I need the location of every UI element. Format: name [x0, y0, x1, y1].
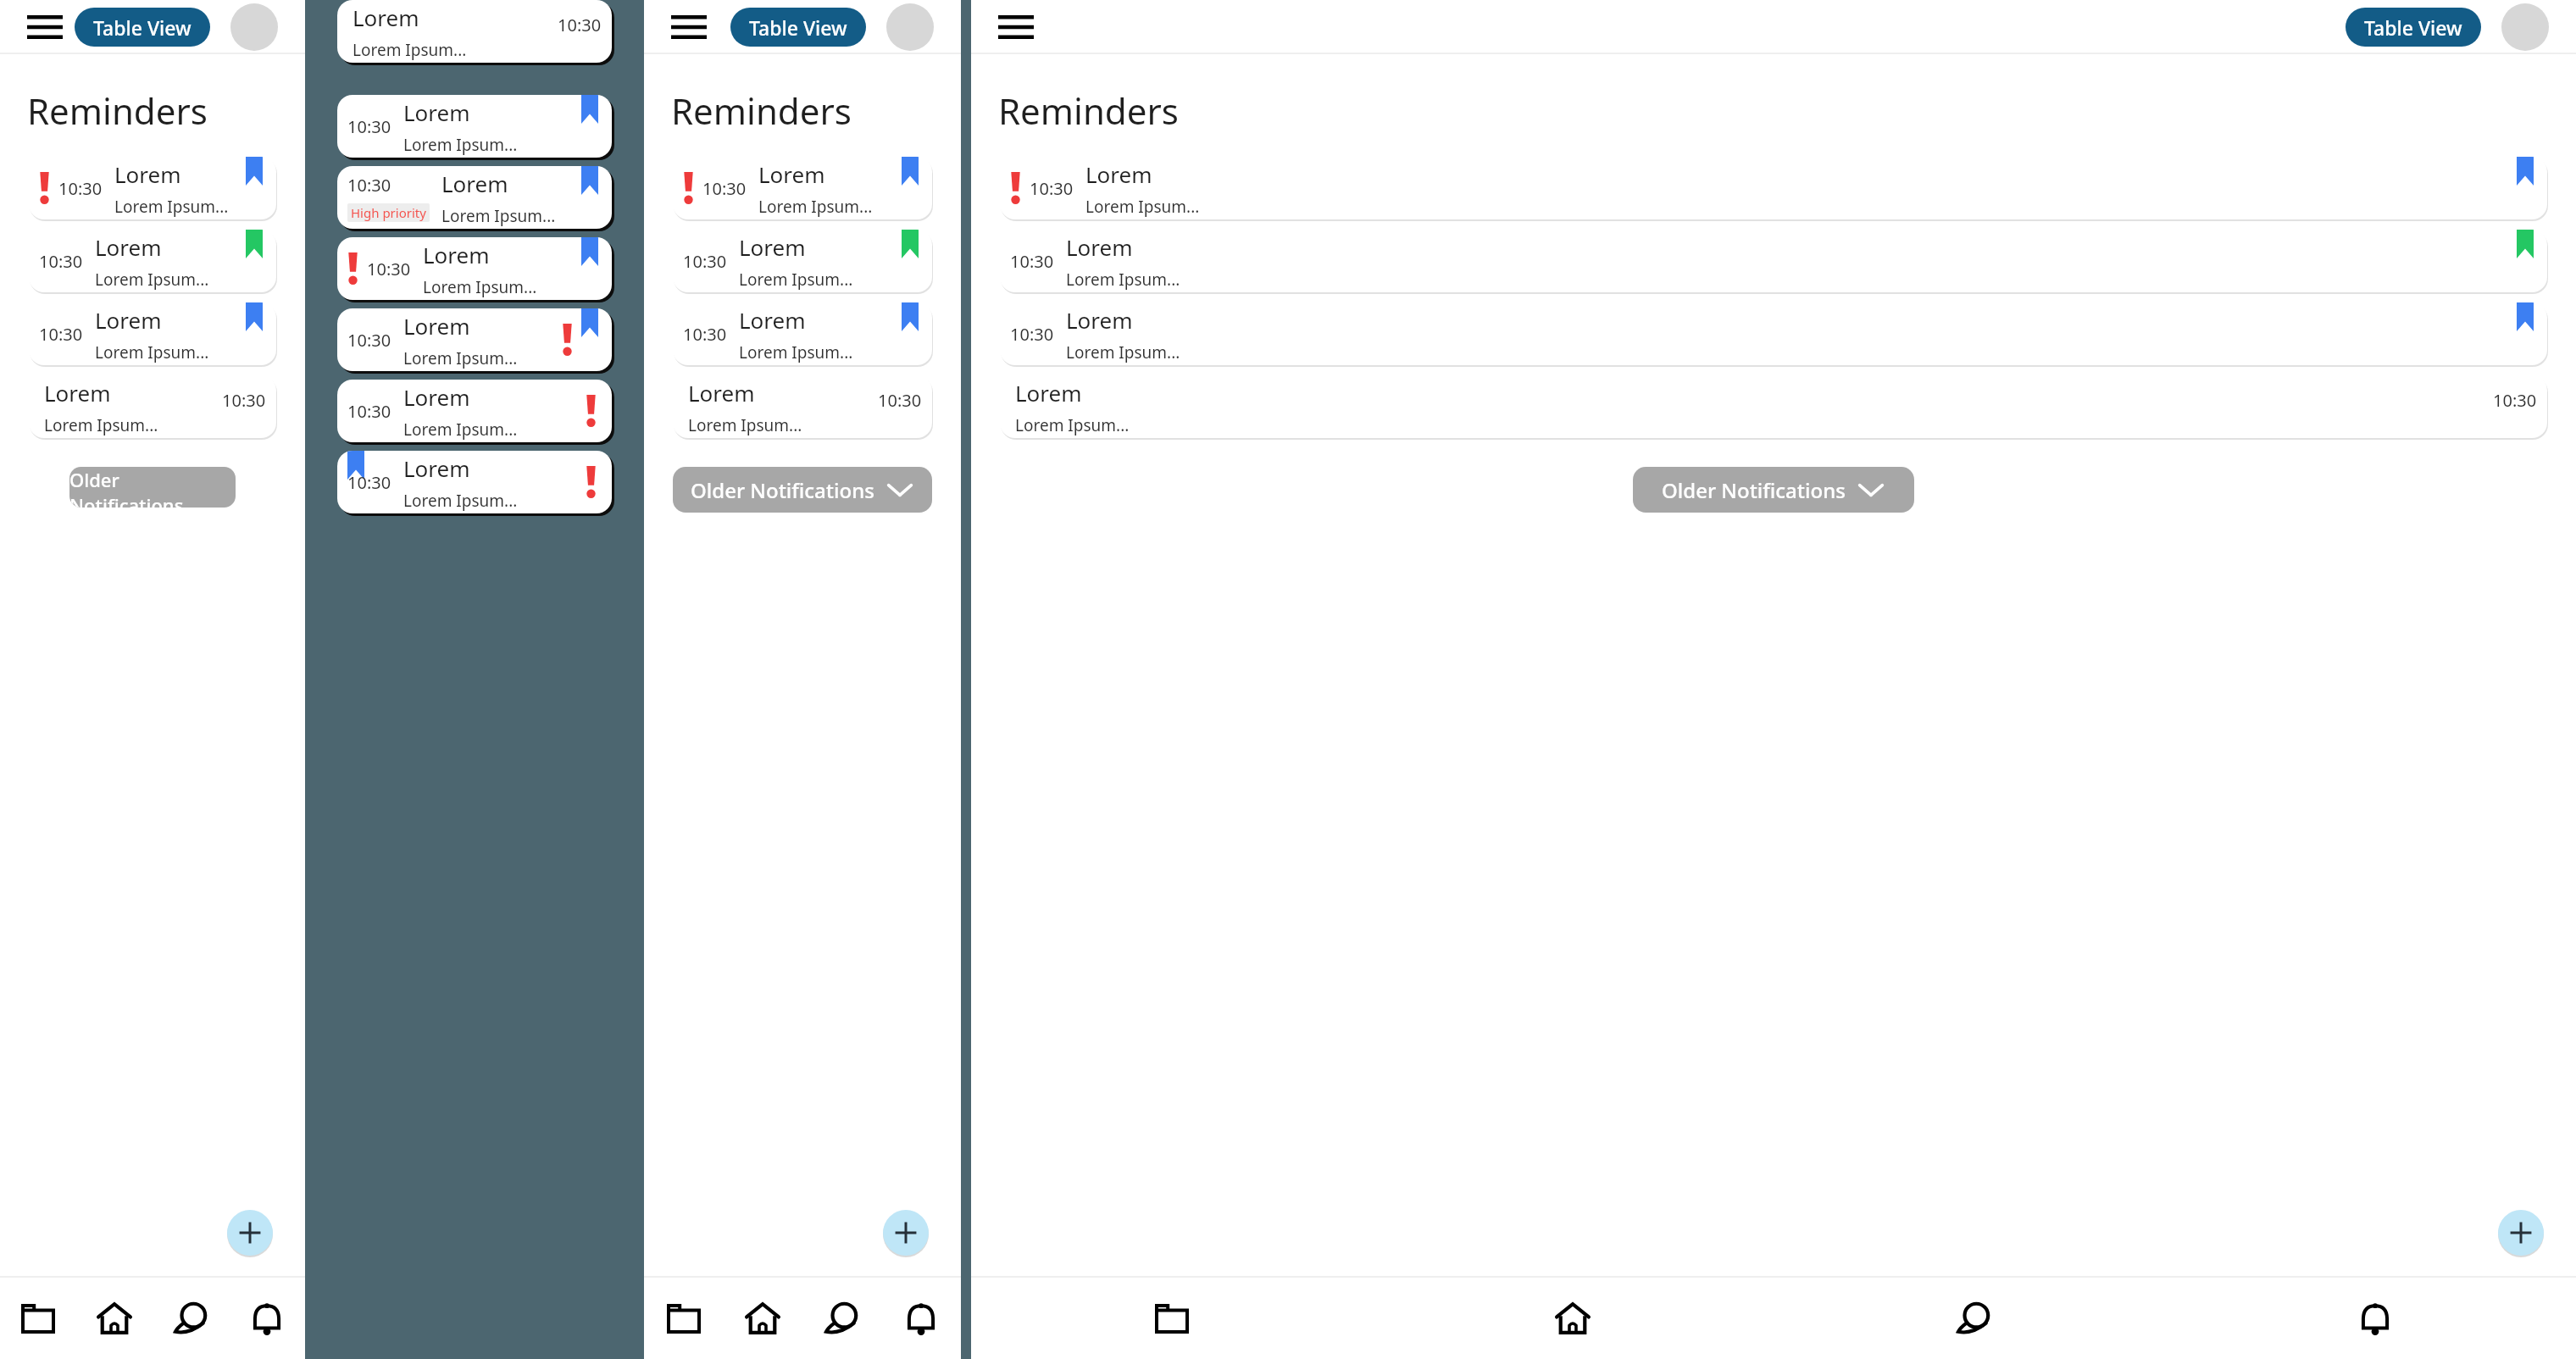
button[interactable]: Home — [76, 1278, 153, 1359]
button[interactable]: 10:30 — [29, 230, 276, 292]
staticText: 10:30 — [1010, 323, 1054, 346]
button[interactable]: Notifications — [2174, 1278, 2576, 1359]
staticText: 10:30 — [683, 323, 727, 346]
staticText: Lorem Ipsum... — [688, 414, 802, 436]
button[interactable]: 10:30 — [673, 302, 932, 365]
button[interactable]: 10:30 — [337, 237, 612, 300]
staticText: Lorem Ipsum... — [403, 490, 518, 512]
button[interactable]: Lorem — [1000, 375, 2547, 438]
button[interactable]: Profile — [2501, 3, 2549, 51]
button[interactable]: Older Notifications — [673, 467, 932, 513]
button[interactable]: 10:30 — [337, 308, 612, 371]
staticText: Table View — [2364, 14, 2462, 41]
button[interactable]: Home — [723, 1278, 802, 1359]
button[interactable]: Menu — [671, 7, 712, 47]
staticText: Lorem Ipsum... — [423, 276, 537, 298]
button[interactable]: 10:30 — [337, 95, 612, 158]
staticText: Older Notifications — [1662, 476, 1846, 504]
staticText: Lorem — [1066, 305, 1133, 335]
button[interactable]: 10:30 — [337, 166, 612, 229]
staticText: 10:30 — [39, 250, 83, 273]
staticText: Lorem — [403, 311, 470, 341]
staticText: Table View — [93, 14, 192, 41]
staticText: Lorem — [95, 232, 162, 262]
button[interactable]: 10:30 — [1000, 157, 2547, 219]
staticText: Older Notifications — [69, 467, 236, 508]
staticText: High priority — [351, 204, 426, 221]
button[interactable]: 10:30 — [337, 380, 612, 442]
staticText: Reminders — [671, 86, 852, 135]
staticText: Lorem — [739, 305, 806, 335]
button[interactable]: Add — [883, 1210, 929, 1256]
button[interactable]: Add — [2498, 1210, 2544, 1256]
button[interactable]: Messages — [1773, 1278, 2174, 1359]
staticText: Reminders — [27, 86, 208, 135]
button[interactable]: Messages — [153, 1278, 229, 1359]
button[interactable]: Lorem — [29, 375, 276, 438]
staticText: 10:30 — [347, 471, 391, 494]
button[interactable]: Table View — [75, 8, 210, 47]
staticText: 10:30 — [39, 323, 83, 346]
staticText: Lorem Ipsum... — [403, 419, 518, 441]
staticText: 10:30 — [878, 389, 922, 412]
staticText: Lorem — [114, 159, 181, 189]
button[interactable]: 10:30 — [29, 302, 276, 365]
staticText: Lorem Ipsum... — [1066, 269, 1180, 291]
staticText: Lorem Ipsum... — [441, 205, 556, 227]
staticText: 10:30 — [2493, 389, 2537, 412]
button[interactable]: Add — [227, 1210, 273, 1256]
staticText: Lorem Ipsum... — [353, 39, 467, 61]
staticText: Lorem — [403, 453, 470, 483]
button[interactable]: Older Notifications — [69, 467, 236, 508]
button[interactable]: 10:30 — [1000, 302, 2547, 365]
button[interactable]: Notifications — [881, 1278, 961, 1359]
staticText: Lorem Ipsum... — [758, 196, 873, 218]
staticText: 10:30 — [58, 177, 103, 200]
staticText: 10:30 — [1030, 177, 1074, 200]
button[interactable]: Lorem — [673, 375, 932, 438]
staticText: Older Notifications — [691, 476, 874, 504]
staticText: Lorem — [758, 159, 825, 189]
button[interactable]: Table View — [730, 8, 866, 47]
button[interactable]: 10:30 — [673, 230, 932, 292]
staticText: 10:30 — [683, 250, 727, 273]
staticText: 10:30 — [347, 400, 391, 423]
button[interactable]: Home — [1372, 1278, 1773, 1359]
button[interactable]: 10:30 — [29, 157, 276, 219]
staticText: Lorem — [688, 378, 755, 408]
staticText: Lorem Ipsum... — [403, 134, 518, 156]
staticText: 10:30 — [702, 177, 747, 200]
button[interactable]: Table View — [2346, 8, 2481, 47]
staticText: Lorem — [403, 382, 470, 412]
button[interactable]: Menu — [998, 7, 1039, 47]
staticText: Lorem Ipsum... — [95, 269, 209, 291]
button[interactable]: Messages — [802, 1278, 881, 1359]
staticText: 10:30 — [222, 389, 266, 412]
button[interactable]: Profile — [230, 3, 278, 51]
button[interactable]: Notifications — [229, 1278, 305, 1359]
button[interactable]: Files — [971, 1278, 1372, 1359]
button[interactable]: Older Notifications — [1633, 467, 1914, 513]
button[interactable]: 10:30 — [337, 451, 612, 513]
button[interactable]: 10:30 — [673, 157, 932, 219]
staticText: Lorem — [1085, 159, 1152, 189]
staticText: Lorem — [739, 232, 806, 262]
button[interactable]: 10:30 — [1000, 230, 2547, 292]
staticText: Lorem Ipsum... — [739, 269, 853, 291]
staticText: 10:30 — [558, 14, 602, 36]
staticText: Lorem — [353, 3, 419, 32]
staticText: Lorem — [403, 97, 470, 127]
staticText: Lorem — [423, 240, 490, 269]
button[interactable]: Files — [644, 1278, 723, 1359]
staticText: Lorem Ipsum... — [114, 196, 229, 218]
button[interactable]: Profile — [886, 3, 934, 51]
staticText: 10:30 — [347, 174, 391, 197]
staticText: Lorem — [95, 305, 162, 335]
staticText: Lorem — [44, 378, 111, 408]
staticText: Lorem — [1066, 232, 1133, 262]
staticText: 10:30 — [1010, 250, 1054, 273]
button[interactable]: Menu — [27, 7, 68, 47]
button[interactable]: Files — [0, 1278, 76, 1359]
staticText: Lorem Ipsum... — [403, 347, 518, 369]
button[interactable]: Lorem — [337, 0, 612, 63]
